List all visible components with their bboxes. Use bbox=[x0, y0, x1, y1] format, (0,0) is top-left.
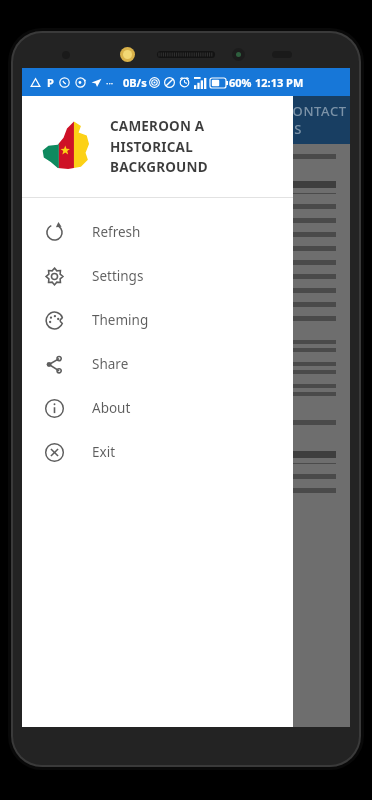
staticText: P bbox=[47, 75, 54, 90]
staticText: Exit bbox=[92, 443, 116, 461]
staticText: CAMEROON A HISTORICAL BACKGROUND bbox=[110, 117, 208, 176]
staticText: 0B/s bbox=[123, 75, 147, 90]
button[interactable]: Refresh bbox=[22, 210, 293, 254]
button[interactable]: Settings bbox=[22, 254, 293, 298]
button[interactable]: Theming bbox=[22, 298, 293, 342]
button[interactable]: About bbox=[22, 386, 293, 430]
staticText: Settings bbox=[92, 267, 144, 285]
staticText: Refresh bbox=[92, 223, 141, 241]
staticText: Theming bbox=[92, 311, 149, 329]
button[interactable]: Exit bbox=[22, 430, 293, 474]
staticText: Share bbox=[92, 355, 129, 373]
staticText: 60% bbox=[229, 75, 252, 90]
staticText: ··· bbox=[106, 77, 114, 89]
staticText: About bbox=[92, 399, 131, 417]
staticText: CONTACT US bbox=[284, 102, 350, 138]
staticText: 12:13 PM bbox=[255, 75, 304, 90]
button[interactable]: Share bbox=[22, 342, 293, 386]
